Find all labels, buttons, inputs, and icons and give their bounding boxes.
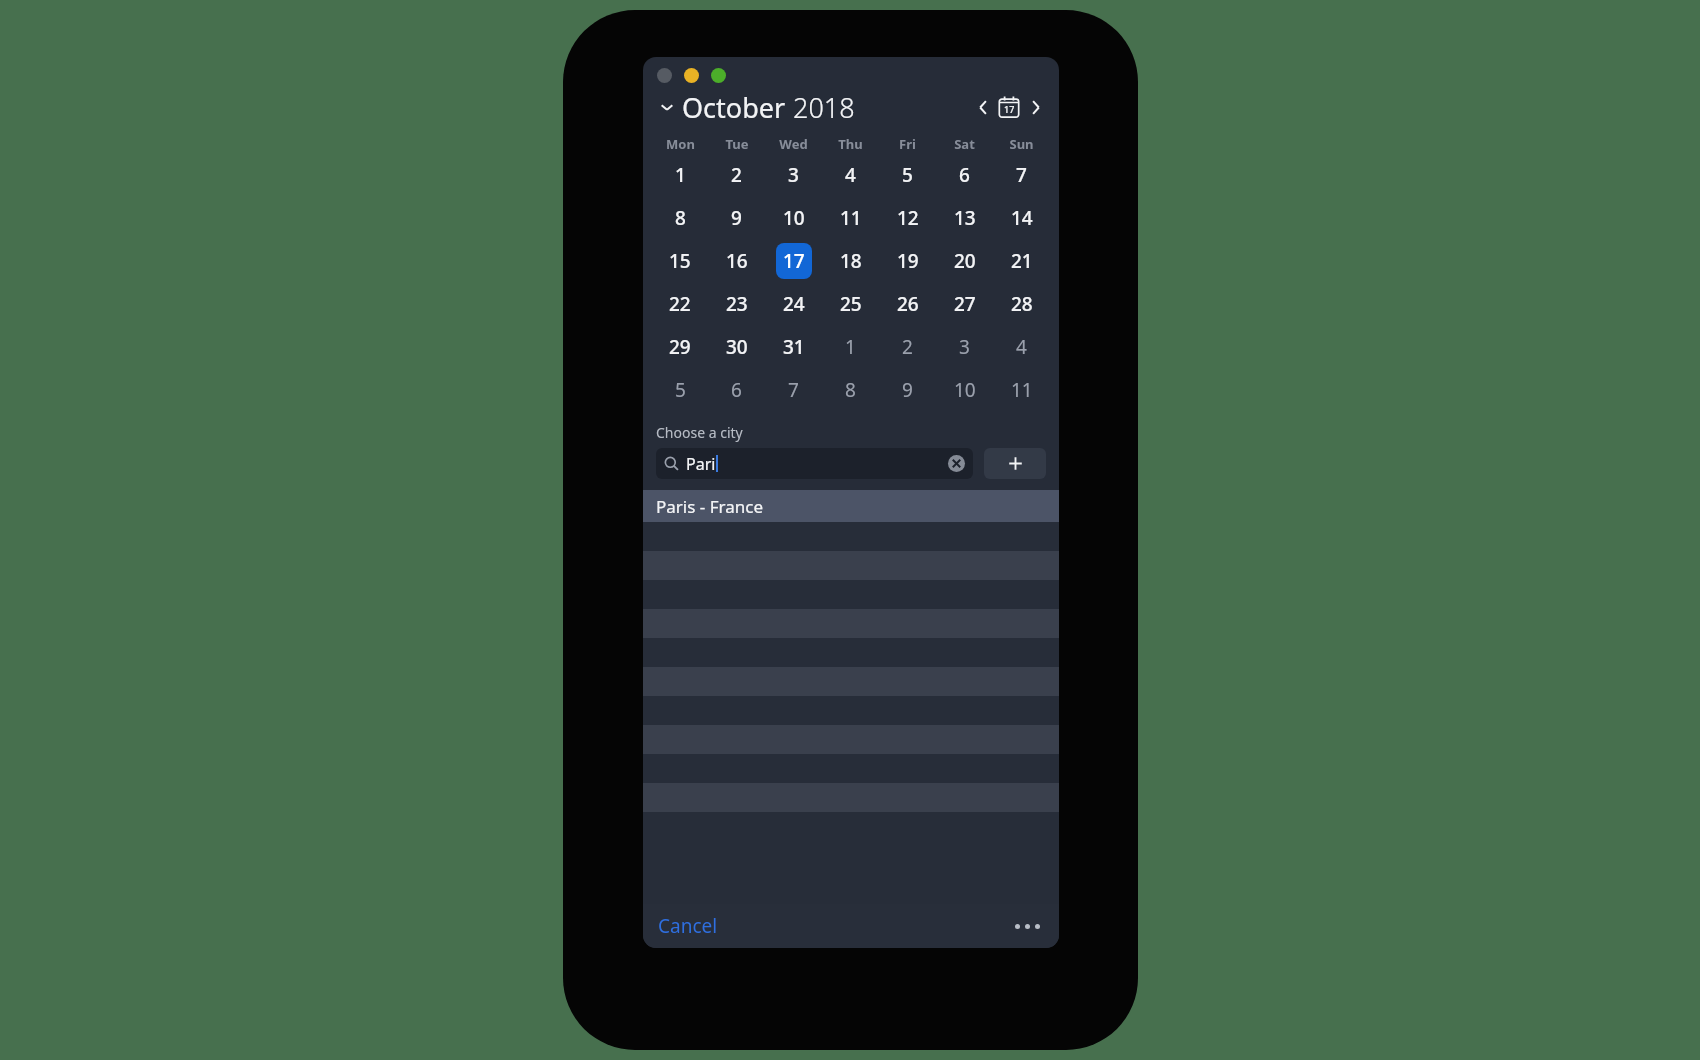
staticText: 8	[845, 377, 856, 403]
staticText: 4	[1016, 334, 1027, 360]
staticText: Fri	[899, 135, 916, 153]
button[interactable]: 13	[936, 196, 993, 239]
button[interactable]: Pari	[656, 448, 973, 479]
button[interactable]: 19	[879, 239, 936, 282]
button[interactable]: 10	[936, 368, 993, 411]
staticText: 6	[959, 162, 970, 188]
button[interactable]: 22	[652, 282, 708, 325]
button[interactable]: 23	[708, 282, 765, 325]
staticText: 17	[1004, 103, 1015, 115]
button[interactable]: 18	[822, 239, 879, 282]
button[interactable]: 4	[993, 325, 1050, 368]
staticText: 2	[902, 334, 913, 360]
button[interactable]: 31	[765, 325, 822, 368]
button[interactable]: 29	[652, 325, 708, 368]
staticText: 11	[840, 205, 862, 231]
staticText: 15	[669, 248, 691, 274]
button[interactable]: 3	[936, 325, 993, 368]
staticText: Paris - France	[656, 495, 763, 518]
button[interactable]: 5	[652, 368, 708, 411]
button[interactable]: Clear search	[948, 455, 965, 472]
button[interactable]: 5	[879, 153, 936, 196]
button[interactable]: 21	[993, 239, 1050, 282]
staticText: 9	[731, 205, 742, 231]
button[interactable]: 30	[708, 325, 765, 368]
button[interactable]: 14	[993, 196, 1050, 239]
staticText: 3	[959, 334, 970, 360]
staticText: Pari	[686, 453, 716, 475]
staticText: 17	[783, 248, 805, 274]
button[interactable]: 6	[708, 368, 765, 411]
button[interactable]: Expand month	[656, 96, 678, 118]
staticText: Sun	[1009, 135, 1034, 153]
button[interactable]: 8	[652, 196, 708, 239]
button[interactable]: Previous month	[972, 96, 994, 118]
button[interactable]: 3	[765, 153, 822, 196]
staticText: 11	[1011, 377, 1033, 403]
staticText: 2018	[793, 89, 855, 126]
button[interactable]: 10	[765, 196, 822, 239]
staticText: 23	[726, 291, 748, 317]
staticText: 13	[954, 205, 976, 231]
button[interactable]: 2	[708, 153, 765, 196]
staticText: 10	[954, 377, 976, 403]
button[interactable]: 6	[936, 153, 993, 196]
button[interactable]: 12	[879, 196, 936, 239]
staticText: 18	[840, 248, 862, 274]
staticText: 7	[788, 377, 799, 403]
staticText: 4	[845, 162, 856, 188]
button[interactable]: 9	[708, 196, 765, 239]
button[interactable]: 15	[652, 239, 708, 282]
button[interactable]: 24	[765, 282, 822, 325]
staticText: 21	[1011, 248, 1033, 274]
button[interactable]: 26	[879, 282, 936, 325]
button[interactable]: 1	[652, 153, 708, 196]
button[interactable]: Next month	[1024, 96, 1046, 118]
button[interactable]: 9	[879, 368, 936, 411]
staticText: 31	[783, 334, 805, 360]
button[interactable]: 7	[993, 153, 1050, 196]
staticText: 12	[897, 205, 919, 231]
staticText: 1	[675, 162, 686, 188]
staticText: 10	[783, 205, 805, 231]
button[interactable]: Add city	[984, 448, 1046, 479]
button[interactable]: 1	[822, 325, 879, 368]
button[interactable]: 4	[822, 153, 879, 196]
staticText: 30	[726, 334, 748, 360]
staticText: 20	[954, 248, 976, 274]
button[interactable]: 16	[708, 239, 765, 282]
button[interactable]: 20	[936, 239, 993, 282]
button[interactable]: 7	[765, 368, 822, 411]
button[interactable]: 2	[879, 325, 936, 368]
staticText: 5	[902, 162, 913, 188]
button[interactable]: Maximize	[711, 68, 726, 83]
button[interactable]: 25	[822, 282, 879, 325]
staticText: 5	[675, 377, 686, 403]
button[interactable]: Today	[996, 94, 1022, 120]
button[interactable]: 27	[936, 282, 993, 325]
button[interactable]: More options	[1009, 918, 1046, 935]
button[interactable]: Paris - France	[643, 490, 1059, 522]
button[interactable]: 8	[822, 368, 879, 411]
staticText: Cancel	[658, 913, 718, 939]
button[interactable]: Close	[657, 68, 672, 83]
button[interactable]: 28	[993, 282, 1050, 325]
button[interactable]: Cancel	[656, 907, 720, 945]
button[interactable]: 11	[822, 196, 879, 239]
staticText: 16	[726, 248, 748, 274]
staticText: Sat	[954, 135, 975, 153]
button[interactable]: Minimize	[684, 68, 699, 83]
button[interactable]: 17	[765, 239, 822, 282]
button[interactable]: 11	[993, 368, 1050, 411]
